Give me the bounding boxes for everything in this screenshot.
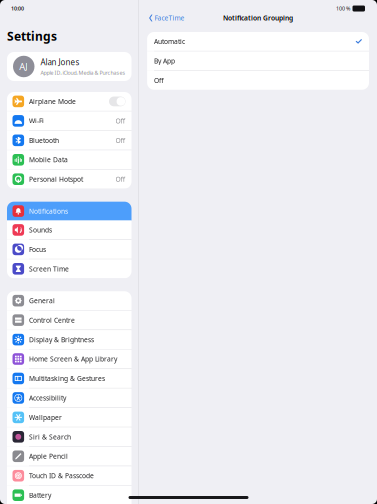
button[interactable]: AJ (7, 52, 131, 81)
button[interactable]: Siri & Search (7, 427, 131, 446)
staticText: Notification Grouping (223, 14, 293, 22)
button[interactable]: Screen Time (7, 259, 131, 278)
staticText: Bluetooth (29, 136, 59, 145)
button[interactable]: Accessibility (7, 388, 131, 407)
button[interactable]: Multitasking & Gestures (7, 369, 131, 388)
staticText: Settings (7, 28, 57, 44)
button[interactable]: By App (147, 51, 369, 70)
button[interactable]: Off (147, 71, 369, 90)
button[interactable]: Focus (7, 240, 131, 259)
staticText: Off (154, 76, 164, 85)
button[interactable]: Personal Hotspot (7, 170, 131, 189)
staticText: Apple Pencil (29, 452, 68, 461)
staticText: Automatic (154, 37, 185, 46)
staticText: Alan Jones (40, 57, 79, 67)
staticText: 100 % (336, 5, 350, 12)
staticText: Mobile Data (29, 155, 68, 164)
staticText: Display & Brightness (29, 335, 94, 344)
staticText: By App (154, 56, 175, 65)
button[interactable]: Notifications (7, 202, 131, 221)
button[interactable]: FaceTime (144, 11, 187, 25)
staticText: Wallpaper (29, 413, 62, 422)
staticText: Sounds (29, 225, 52, 234)
button[interactable]: Wi-Fi (7, 111, 131, 130)
staticText: Multitasking & Gestures (29, 374, 105, 383)
staticText: Off (115, 136, 125, 145)
button[interactable]: Mobile Data (7, 150, 131, 169)
button[interactable]: Home Screen & App Library (7, 350, 131, 368)
staticText: Airplane Mode (29, 97, 76, 106)
staticText: Wi-Fi (29, 116, 44, 125)
button[interactable]: Battery (7, 486, 131, 504)
staticText: Apple ID, iCloud, Media & Purchases (40, 69, 125, 76)
button[interactable]: Sounds (7, 220, 131, 239)
staticText: Control Centre (29, 316, 75, 325)
button[interactable]: Airplane Mode (7, 92, 131, 111)
staticText: Home Screen & App Library (29, 355, 117, 363)
button[interactable]: Display & Brightness (7, 330, 131, 349)
button[interactable]: Automatic (147, 32, 369, 51)
staticText: Focus (29, 245, 46, 254)
staticText: General (29, 296, 55, 305)
button[interactable]: Apple Pencil (7, 447, 131, 466)
staticText: Off (115, 116, 125, 125)
button[interactable]: Touch ID & Passcode (7, 466, 131, 485)
staticText: FaceTime (154, 14, 184, 22)
button[interactable]: Wallpaper (7, 408, 131, 427)
staticText: 10:00 (11, 5, 24, 12)
staticText: Off (115, 175, 125, 184)
staticText: Screen Time (29, 264, 69, 273)
staticText: Touch ID & Passcode (29, 471, 94, 480)
button[interactable]: Control Centre (7, 311, 131, 330)
staticText: Siri & Search (29, 432, 71, 441)
staticText: Personal Hotspot (29, 175, 83, 184)
staticText: Notifications (29, 207, 68, 215)
button[interactable]: General (7, 291, 131, 310)
staticText: Battery (29, 491, 51, 500)
staticText: AJ (19, 60, 28, 73)
staticText: Accessibility (29, 393, 66, 402)
button[interactable]: Bluetooth (7, 131, 131, 150)
